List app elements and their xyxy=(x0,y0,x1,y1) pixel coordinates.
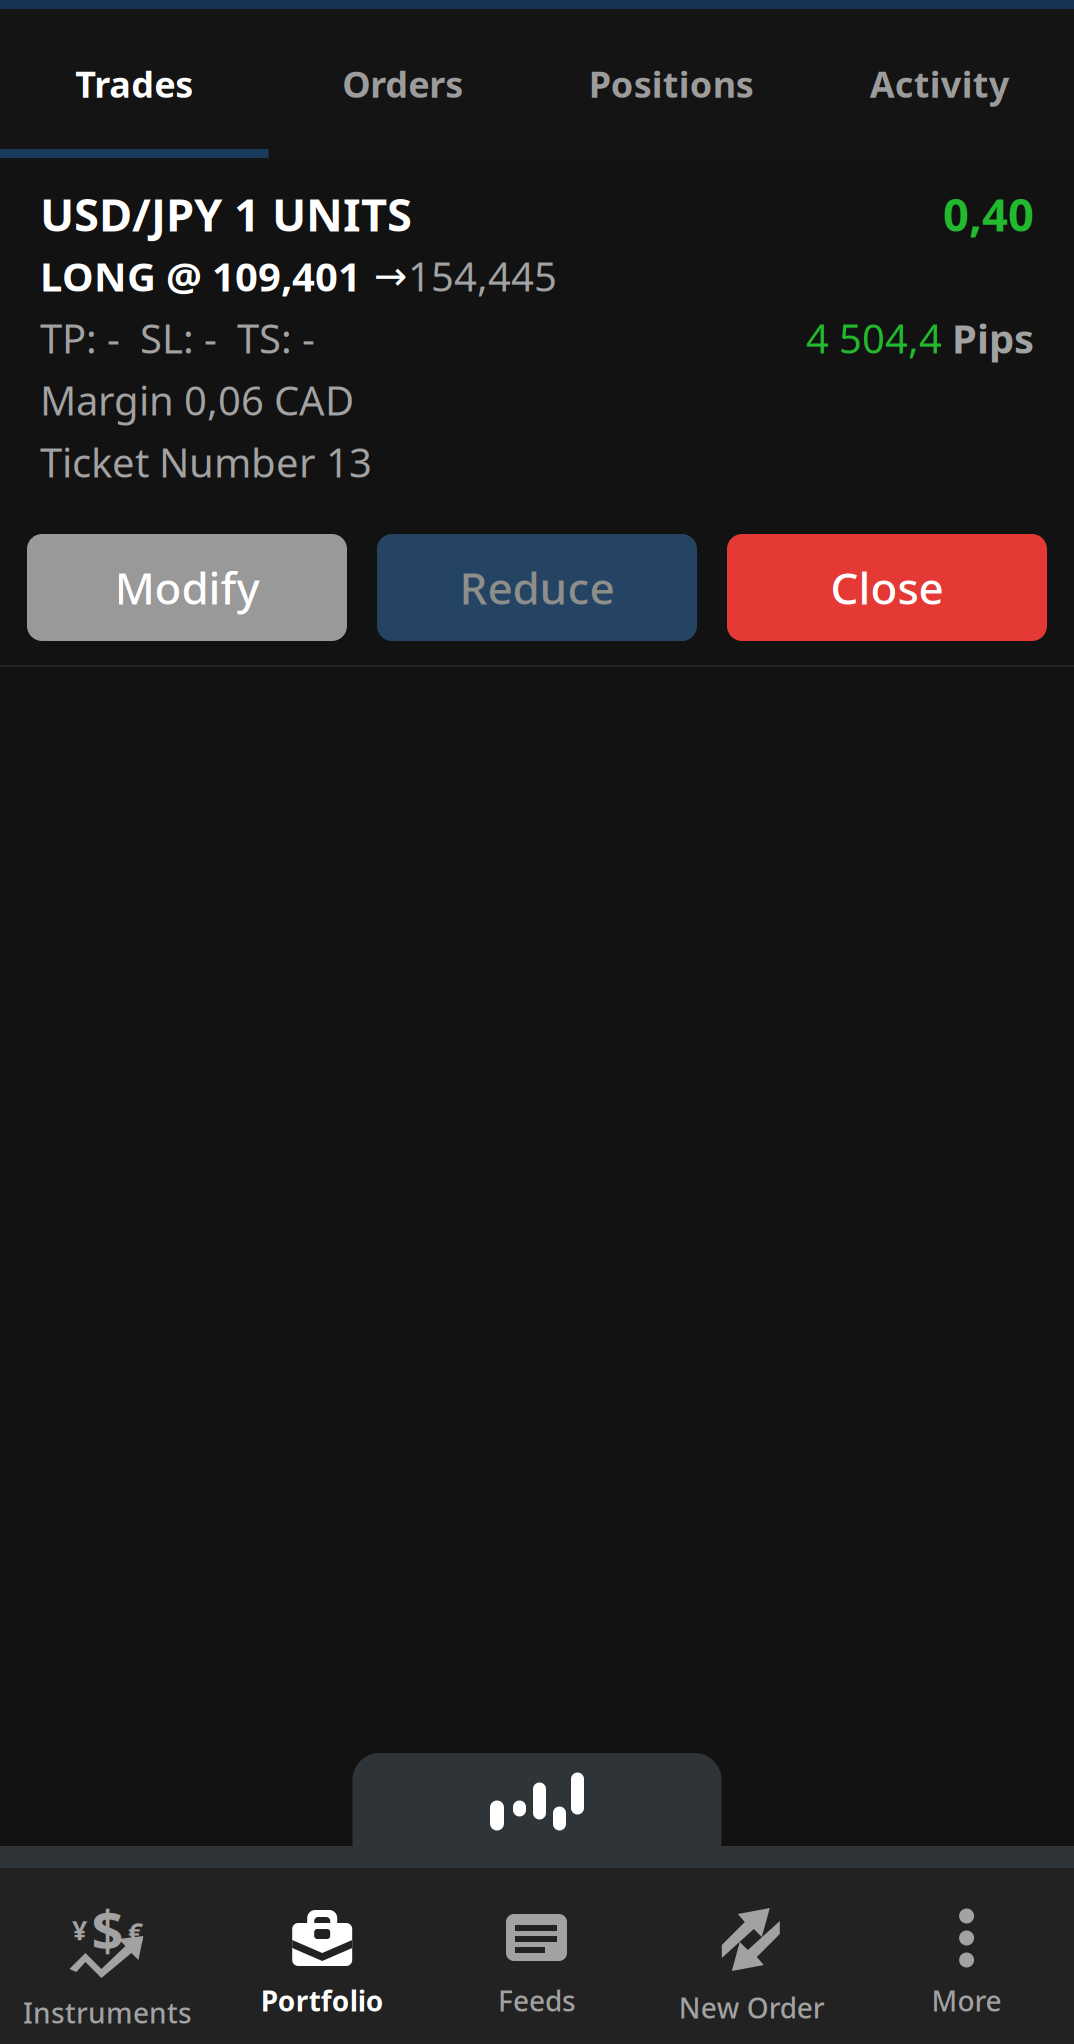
button[interactable]: Portfolio xyxy=(215,1868,430,2044)
staticText: ¥ xyxy=(72,1912,87,1948)
staticText: € xyxy=(128,1914,143,1950)
staticText: 0,40 xyxy=(943,184,1034,244)
staticText: 154,445 xyxy=(408,249,557,302)
staticText: 4 504,4 xyxy=(806,311,952,364)
staticText: LONG @ 109,401 xyxy=(40,249,361,302)
staticText: Activity xyxy=(870,60,1010,108)
button[interactable]: Orders xyxy=(268,9,537,161)
button[interactable]: Activity xyxy=(805,9,1074,161)
staticText: Reduce xyxy=(459,558,614,617)
staticText: Orders xyxy=(342,60,463,108)
staticText: More xyxy=(932,1982,1002,2019)
button[interactable]: Trades xyxy=(0,9,268,161)
staticText: USD/JPY 1 UNITS xyxy=(40,184,412,244)
staticText: Instruments xyxy=(23,1994,192,2031)
staticText: Margin 0,06 CAD xyxy=(40,373,354,426)
staticText: $ xyxy=(91,1892,123,1966)
staticText: → xyxy=(361,253,408,299)
button[interactable]: Close xyxy=(727,534,1047,641)
button[interactable]: Charts xyxy=(352,1753,721,1846)
staticText: Trades xyxy=(75,60,193,108)
staticText: Close xyxy=(830,558,943,617)
staticText: Feeds xyxy=(498,1982,576,2019)
button[interactable]: Feeds xyxy=(430,1868,644,2044)
button[interactable]: ¥ xyxy=(0,1868,215,2044)
staticText: Modify xyxy=(114,558,259,617)
staticText: Portfolio xyxy=(261,1982,384,2019)
staticText: Pips xyxy=(952,311,1034,364)
button[interactable]: Modify xyxy=(27,534,347,641)
button[interactable]: More xyxy=(859,1868,1074,2044)
button[interactable]: Reduce xyxy=(377,534,697,641)
staticText: New Order xyxy=(679,1989,825,2026)
staticText: Positions xyxy=(589,60,754,108)
button[interactable]: Positions xyxy=(537,9,805,161)
staticText: TP: - SL: - TS: - xyxy=(40,311,315,364)
staticText: Ticket Number 13 xyxy=(40,435,372,488)
button[interactable]: New Order xyxy=(644,1868,859,2044)
